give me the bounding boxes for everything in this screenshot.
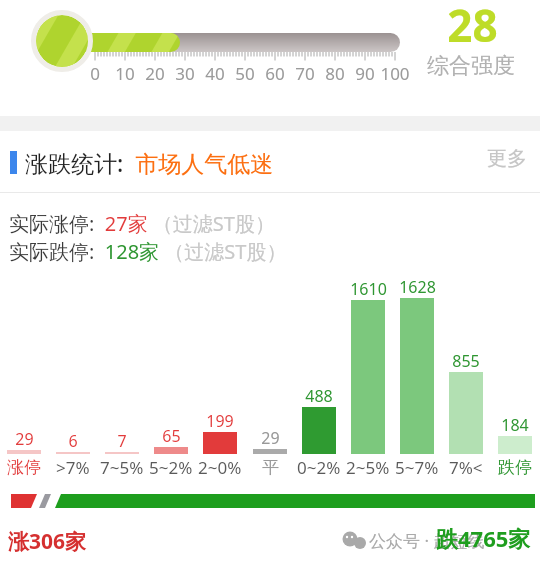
staticText: 10 [115, 62, 135, 85]
staticText: 20 [145, 62, 165, 85]
button[interactable]: 0~2% [295, 456, 343, 478]
staticText: 更多 [487, 146, 527, 171]
staticText: 公众号 · 超短线 [369, 529, 485, 552]
staticText: 5~7% [395, 456, 439, 478]
staticText: 60 [265, 62, 285, 85]
staticText: 跌停 [498, 457, 532, 478]
staticText: 0 [90, 62, 100, 85]
staticText: 70 [295, 62, 315, 85]
staticText: 28 [447, 0, 498, 47]
button[interactable]: 7~5% [98, 456, 146, 478]
staticText: 1610 [350, 278, 387, 298]
button[interactable]: 涨跌统计: 市场人气低迷 [0, 143, 400, 181]
button[interactable]: 跌4765家 [428, 518, 540, 560]
staticText: 7%< [449, 456, 483, 478]
staticText: 涨停 [7, 457, 41, 478]
staticText: 综合强度 [427, 52, 515, 80]
staticText: 80 [325, 62, 345, 85]
staticText: 50 [235, 62, 255, 85]
staticText: 488 [305, 385, 333, 405]
staticText: 1628 [399, 276, 436, 296]
staticText: 实际跌停: 128家 （过滤ST股） [9, 238, 287, 265]
button[interactable]: 5~2% [147, 456, 195, 478]
button[interactable]: >7% [49, 456, 97, 478]
button[interactable]: 更多 [480, 143, 540, 175]
staticText: 实际涨停: 27家 （过滤ST股） [9, 210, 275, 237]
staticText: 29 [15, 428, 34, 448]
button[interactable]: 2~0% [196, 456, 244, 478]
staticText: 40 [205, 62, 225, 85]
button[interactable]: 跌停 [491, 456, 539, 478]
staticText: 7 [117, 430, 127, 450]
staticText: 2~0% [198, 456, 242, 478]
staticText: 199 [206, 410, 234, 430]
staticText: 6 [68, 430, 78, 450]
staticText: 184 [501, 414, 529, 434]
staticText: 65 [162, 425, 181, 445]
button[interactable]: 涨停 [0, 456, 48, 478]
button[interactable]: 2~5% [344, 456, 392, 478]
button[interactable]: 平 [246, 456, 294, 478]
staticText: 29 [261, 427, 280, 447]
staticText: 30 [175, 62, 195, 85]
staticText: 涨306家 [8, 527, 87, 556]
staticText: 涨跌统计: 市场人气低迷 [25, 147, 274, 178]
button[interactable]: 涨306家 [0, 520, 140, 560]
staticText: 5~2% [149, 456, 193, 478]
staticText: >7% [56, 456, 90, 478]
staticText: 90 [355, 62, 375, 85]
staticText: 0~2% [297, 456, 341, 478]
staticText: 100 [380, 62, 410, 85]
button[interactable]: 5~7% [393, 456, 441, 478]
staticText: 平 [262, 457, 279, 478]
staticText: 2~5% [346, 456, 390, 478]
staticText: 7~5% [100, 456, 144, 478]
staticText: 跌4765家 [436, 523, 531, 553]
staticText: 855 [452, 350, 480, 370]
button[interactable]: 7%< [442, 456, 490, 478]
